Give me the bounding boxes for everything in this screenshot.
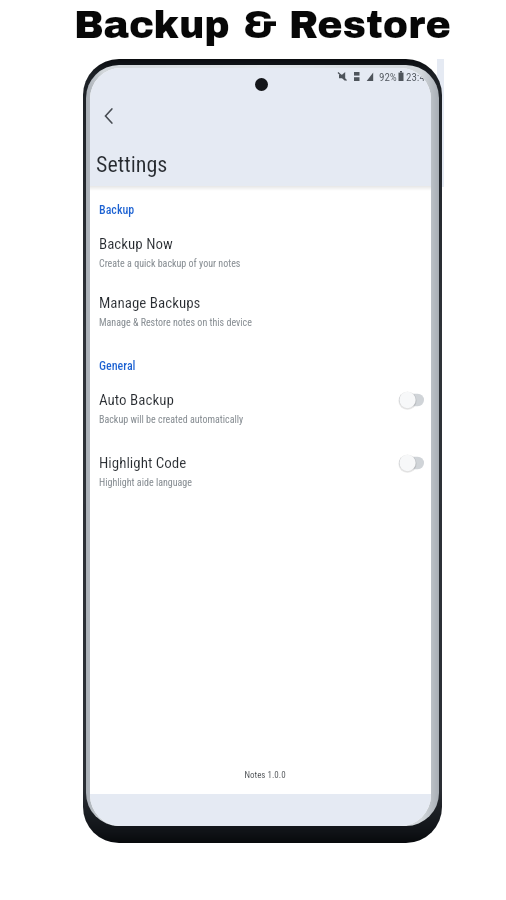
- staticText: Backup will be created automatically: [99, 414, 244, 426]
- staticText: Backup: [99, 203, 135, 217]
- staticText: Backup & Restore: [74, 5, 451, 46]
- staticText: Manage Backups: [99, 294, 201, 312]
- staticText: Notes 1.0.0: [244, 770, 286, 781]
- staticText: Settings: [96, 152, 168, 178]
- staticText: 23:41: [406, 71, 431, 84]
- button[interactable]: Highlight Code: [90, 454, 431, 489]
- staticText: Backup Now: [99, 235, 173, 253]
- staticText: 92%: [379, 71, 397, 84]
- staticText: Manage & Restore notes on this device: [99, 317, 252, 329]
- staticText: Highlight Code: [99, 454, 187, 472]
- staticText: Highlight aide language: [99, 477, 192, 489]
- button[interactable]: Toggle Auto Backup: [398, 390, 425, 410]
- button[interactable]: Backup Now: [90, 235, 431, 270]
- button[interactable]: Toggle Highlight Code: [398, 453, 425, 473]
- staticText: Create a quick backup of your notes: [99, 258, 241, 270]
- staticText: General: [99, 359, 136, 373]
- button[interactable]: Manage Backups: [90, 294, 431, 329]
- button[interactable]: Back: [90, 97, 128, 135]
- staticText: Auto Backup: [99, 391, 174, 409]
- button[interactable]: Auto Backup: [90, 391, 431, 426]
